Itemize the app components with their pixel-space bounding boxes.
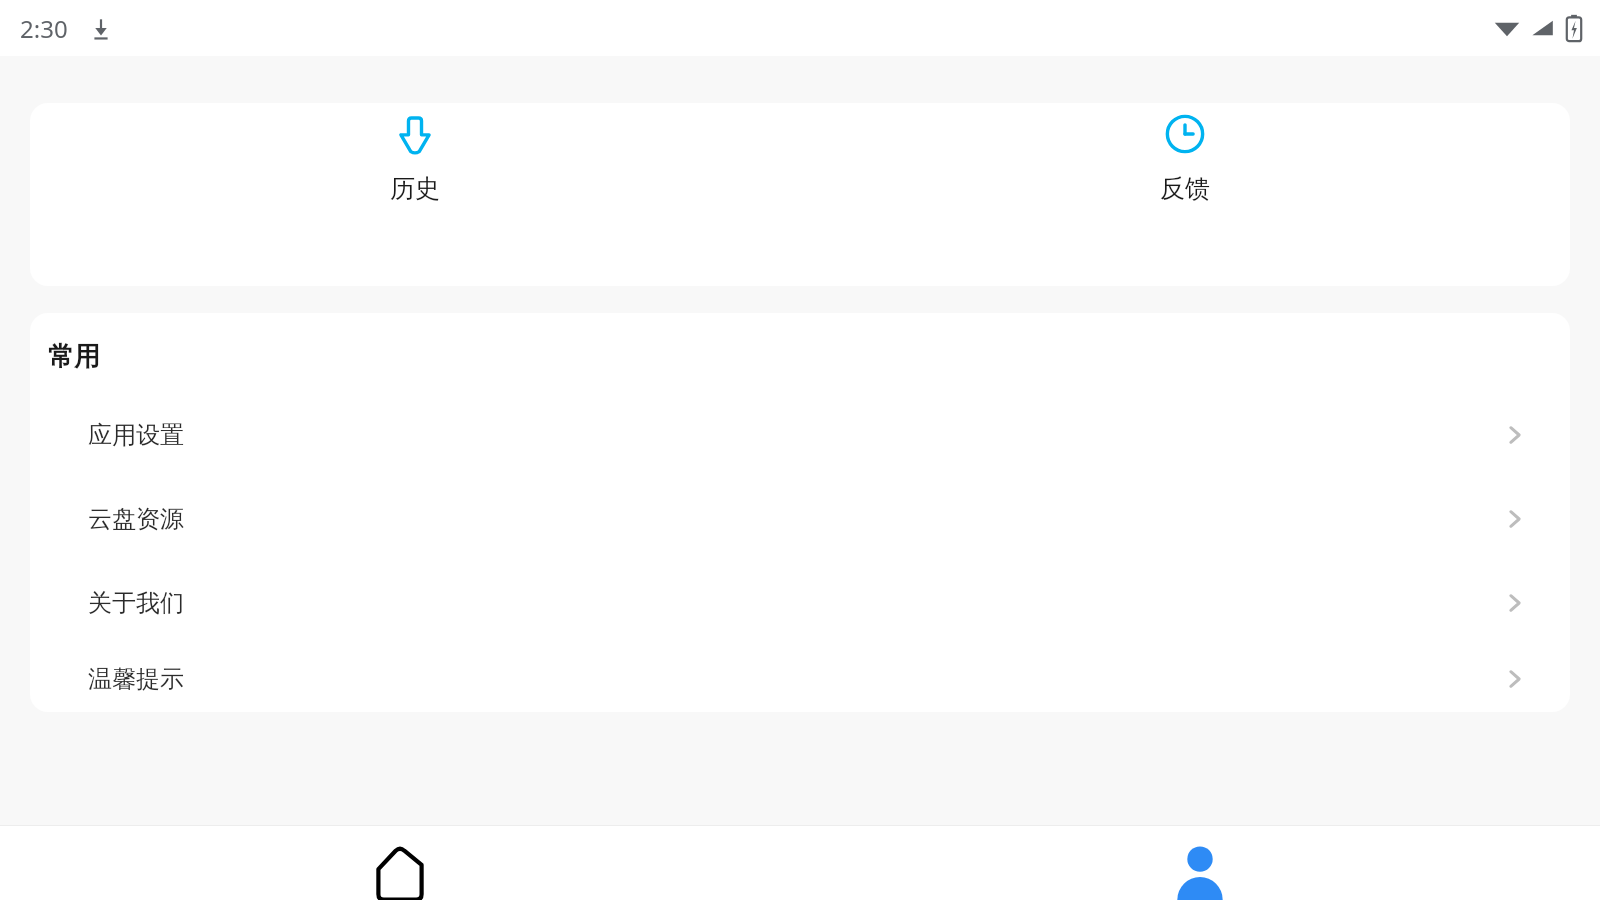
- staticText: 应用设置: [88, 420, 184, 450]
- staticText: 2:30: [20, 12, 68, 45]
- staticText: 关于我们: [88, 588, 184, 618]
- staticText: 反馈: [1160, 173, 1210, 204]
- button[interactable]: 云盘资源: [30, 477, 1570, 561]
- button[interactable]: 温馨提示: [30, 645, 1570, 712]
- staticText: 温馨提示: [88, 664, 184, 694]
- button[interactable]: Profile: [800, 826, 1600, 900]
- button[interactable]: 历史: [350, 103, 480, 214]
- button[interactable]: 关于我们: [30, 561, 1570, 645]
- button[interactable]: Home: [0, 826, 800, 900]
- staticText: 云盘资源: [88, 504, 184, 534]
- staticText: 常用: [48, 340, 100, 373]
- button[interactable]: 应用设置: [30, 393, 1570, 477]
- staticText: 历史: [390, 173, 440, 204]
- button[interactable]: 反馈: [1120, 103, 1250, 214]
